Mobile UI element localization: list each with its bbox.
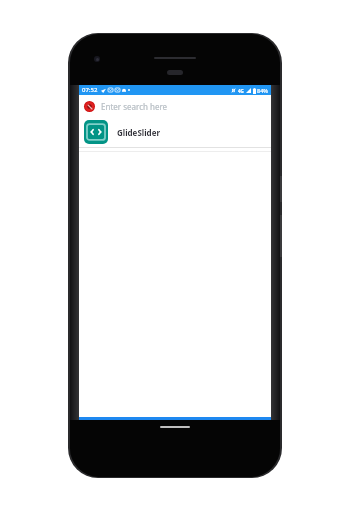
button[interactable]: GlideSlider (79, 117, 271, 147)
other: Search (84, 101, 95, 112)
staticText: Enter search here (101, 101, 168, 112)
staticText: GlideSlider (117, 127, 160, 138)
staticText: 84% (257, 87, 268, 94)
staticText: 07:52 (82, 86, 98, 94)
button[interactable]: Search (79, 95, 271, 117)
staticText: 4G (238, 88, 244, 94)
